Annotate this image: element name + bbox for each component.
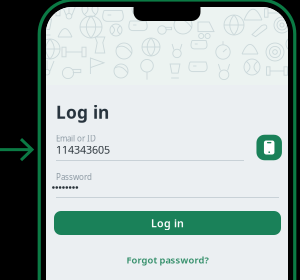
staticText: Password <box>56 172 92 182</box>
staticText: Log in <box>56 100 109 123</box>
staticText: Log in <box>151 216 184 230</box>
staticText: 114343605 <box>56 142 110 157</box>
button[interactable]: Forgot password? <box>54 252 281 268</box>
button[interactable]: Log in <box>54 211 281 235</box>
staticText: Forgot password? <box>126 254 208 266</box>
staticText: Email or ID <box>56 133 96 144</box>
button[interactable]: Scan ID card <box>256 135 282 160</box>
